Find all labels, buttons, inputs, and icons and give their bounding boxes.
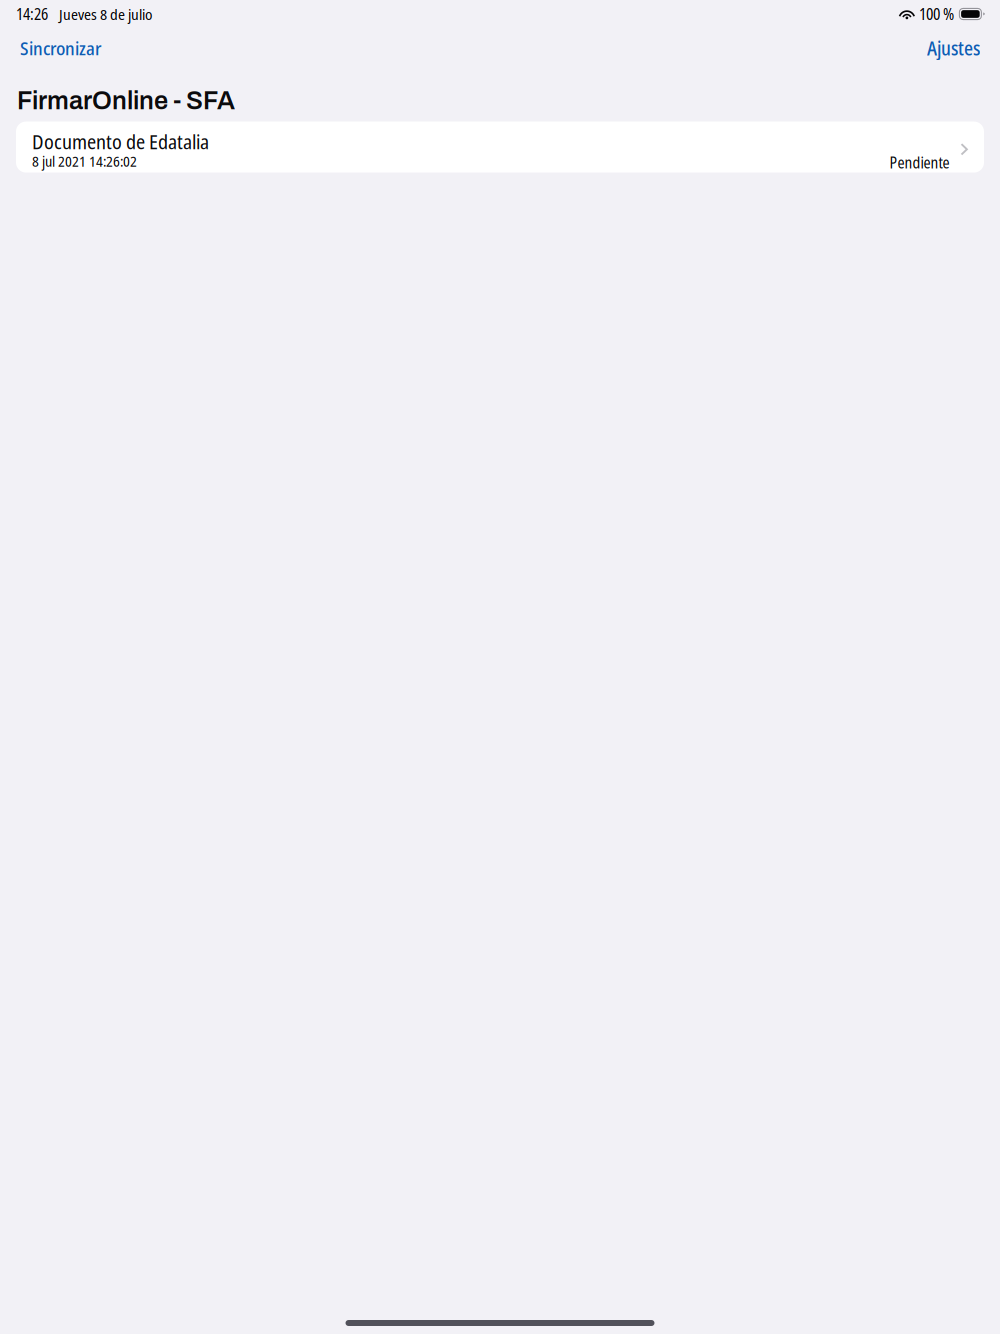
staticText: 14:26 [16, 3, 48, 25]
staticText: Documento de Edatalia [32, 128, 209, 155]
staticText: Ajustes [927, 35, 980, 61]
staticText: Jueves 8 de julio [59, 4, 152, 24]
staticText: Pendiente [889, 152, 949, 173]
button[interactable]: Sincronizar [0, 29, 112, 67]
staticText: 8 jul 2021 14:26:02 [32, 151, 137, 171]
button[interactable]: Ajustes [917, 29, 1000, 67]
staticText: Sincronizar [20, 35, 102, 61]
staticText: FirmarOnline - SFA [17, 87, 235, 115]
button[interactable]: Documento de Edatalia [16, 122, 984, 173]
staticText: 100 % [919, 3, 954, 25]
